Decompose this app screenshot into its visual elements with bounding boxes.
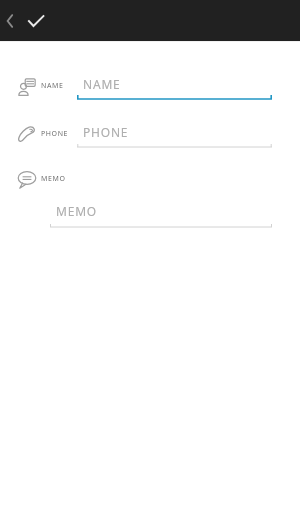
staticText: NAME [83,76,121,92]
staticText: PHONE [83,124,129,140]
button[interactable]: MEMO [50,200,272,228]
button[interactable]: Back [0,0,20,41]
staticText: MEMO [41,174,66,184]
staticText: MEMO [56,203,98,219]
button[interactable]: PHONE [77,119,272,151]
button[interactable]: Save [20,0,52,41]
staticText: NAME [41,81,64,91]
staticText: PHONE [41,129,69,139]
button[interactable]: NAME [77,71,272,103]
